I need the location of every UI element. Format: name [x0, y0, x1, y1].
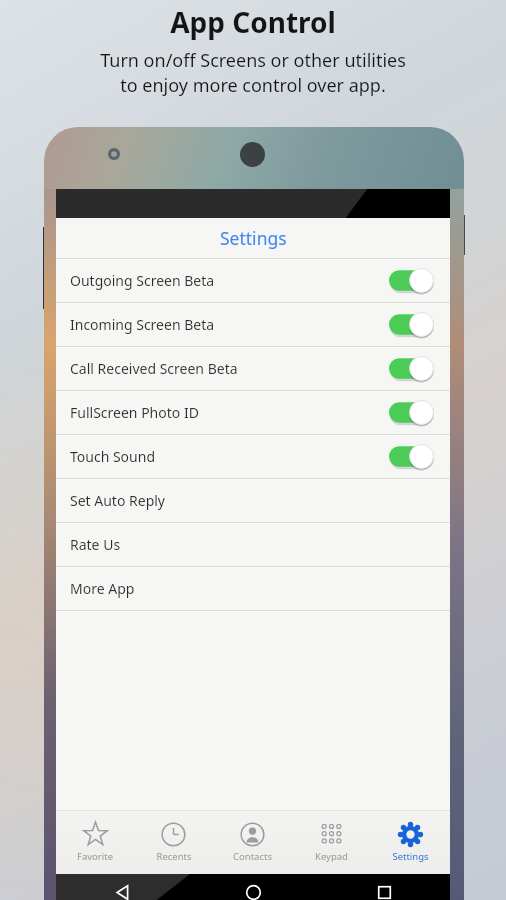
button[interactable]: FullScreen Photo ID	[56, 391, 450, 434]
staticText: FullScreen Photo ID	[70, 403, 199, 422]
button[interactable]: Recents	[134, 810, 213, 874]
staticText: More App	[70, 579, 135, 598]
button[interactable]: Touch Sound	[56, 435, 450, 478]
staticText: Keypad	[315, 850, 348, 863]
staticText: Turn on/off Screens or other utilities	[100, 48, 406, 73]
button[interactable]: Call Received Screen Beta	[56, 347, 450, 390]
button[interactable]: Favorite	[56, 810, 134, 874]
button[interactable]: Settings	[371, 810, 450, 874]
button[interactable]: Toggle on	[389, 312, 434, 337]
staticText: Touch Sound	[70, 447, 156, 466]
button[interactable]: Recent apps	[319, 874, 450, 900]
staticText: Incoming Screen Beta	[70, 315, 215, 334]
button[interactable]: More App	[56, 567, 450, 610]
button[interactable]: Rate Us	[56, 523, 450, 566]
button[interactable]: Toggle on	[389, 268, 434, 293]
staticText: Settings	[220, 226, 287, 250]
button[interactable]: Home	[188, 874, 319, 900]
staticText: Settings	[392, 850, 429, 863]
button[interactable]: Toggle on	[389, 444, 434, 469]
staticText: Call Received Screen Beta	[70, 359, 238, 378]
staticText: to enjoy more control over app.	[120, 73, 386, 98]
button[interactable]: Keypad	[292, 810, 371, 874]
button[interactable]: Outgoing Screen Beta	[56, 259, 450, 302]
button[interactable]: Toggle on	[389, 356, 434, 381]
button[interactable]: Incoming Screen Beta	[56, 303, 450, 346]
staticText: Rate Us	[70, 535, 121, 554]
button[interactable]: Back	[56, 874, 188, 900]
staticText: Outgoing Screen Beta	[70, 271, 215, 290]
button[interactable]: Set Auto Reply	[56, 479, 450, 522]
button[interactable]: Toggle on	[389, 400, 434, 425]
staticText: Recents	[156, 850, 192, 863]
button[interactable]: Contacts	[213, 810, 292, 874]
staticText: App Control	[170, 3, 336, 41]
staticText: Set Auto Reply	[70, 491, 166, 510]
staticText: Favorite	[77, 850, 113, 863]
staticText: Contacts	[233, 850, 272, 863]
